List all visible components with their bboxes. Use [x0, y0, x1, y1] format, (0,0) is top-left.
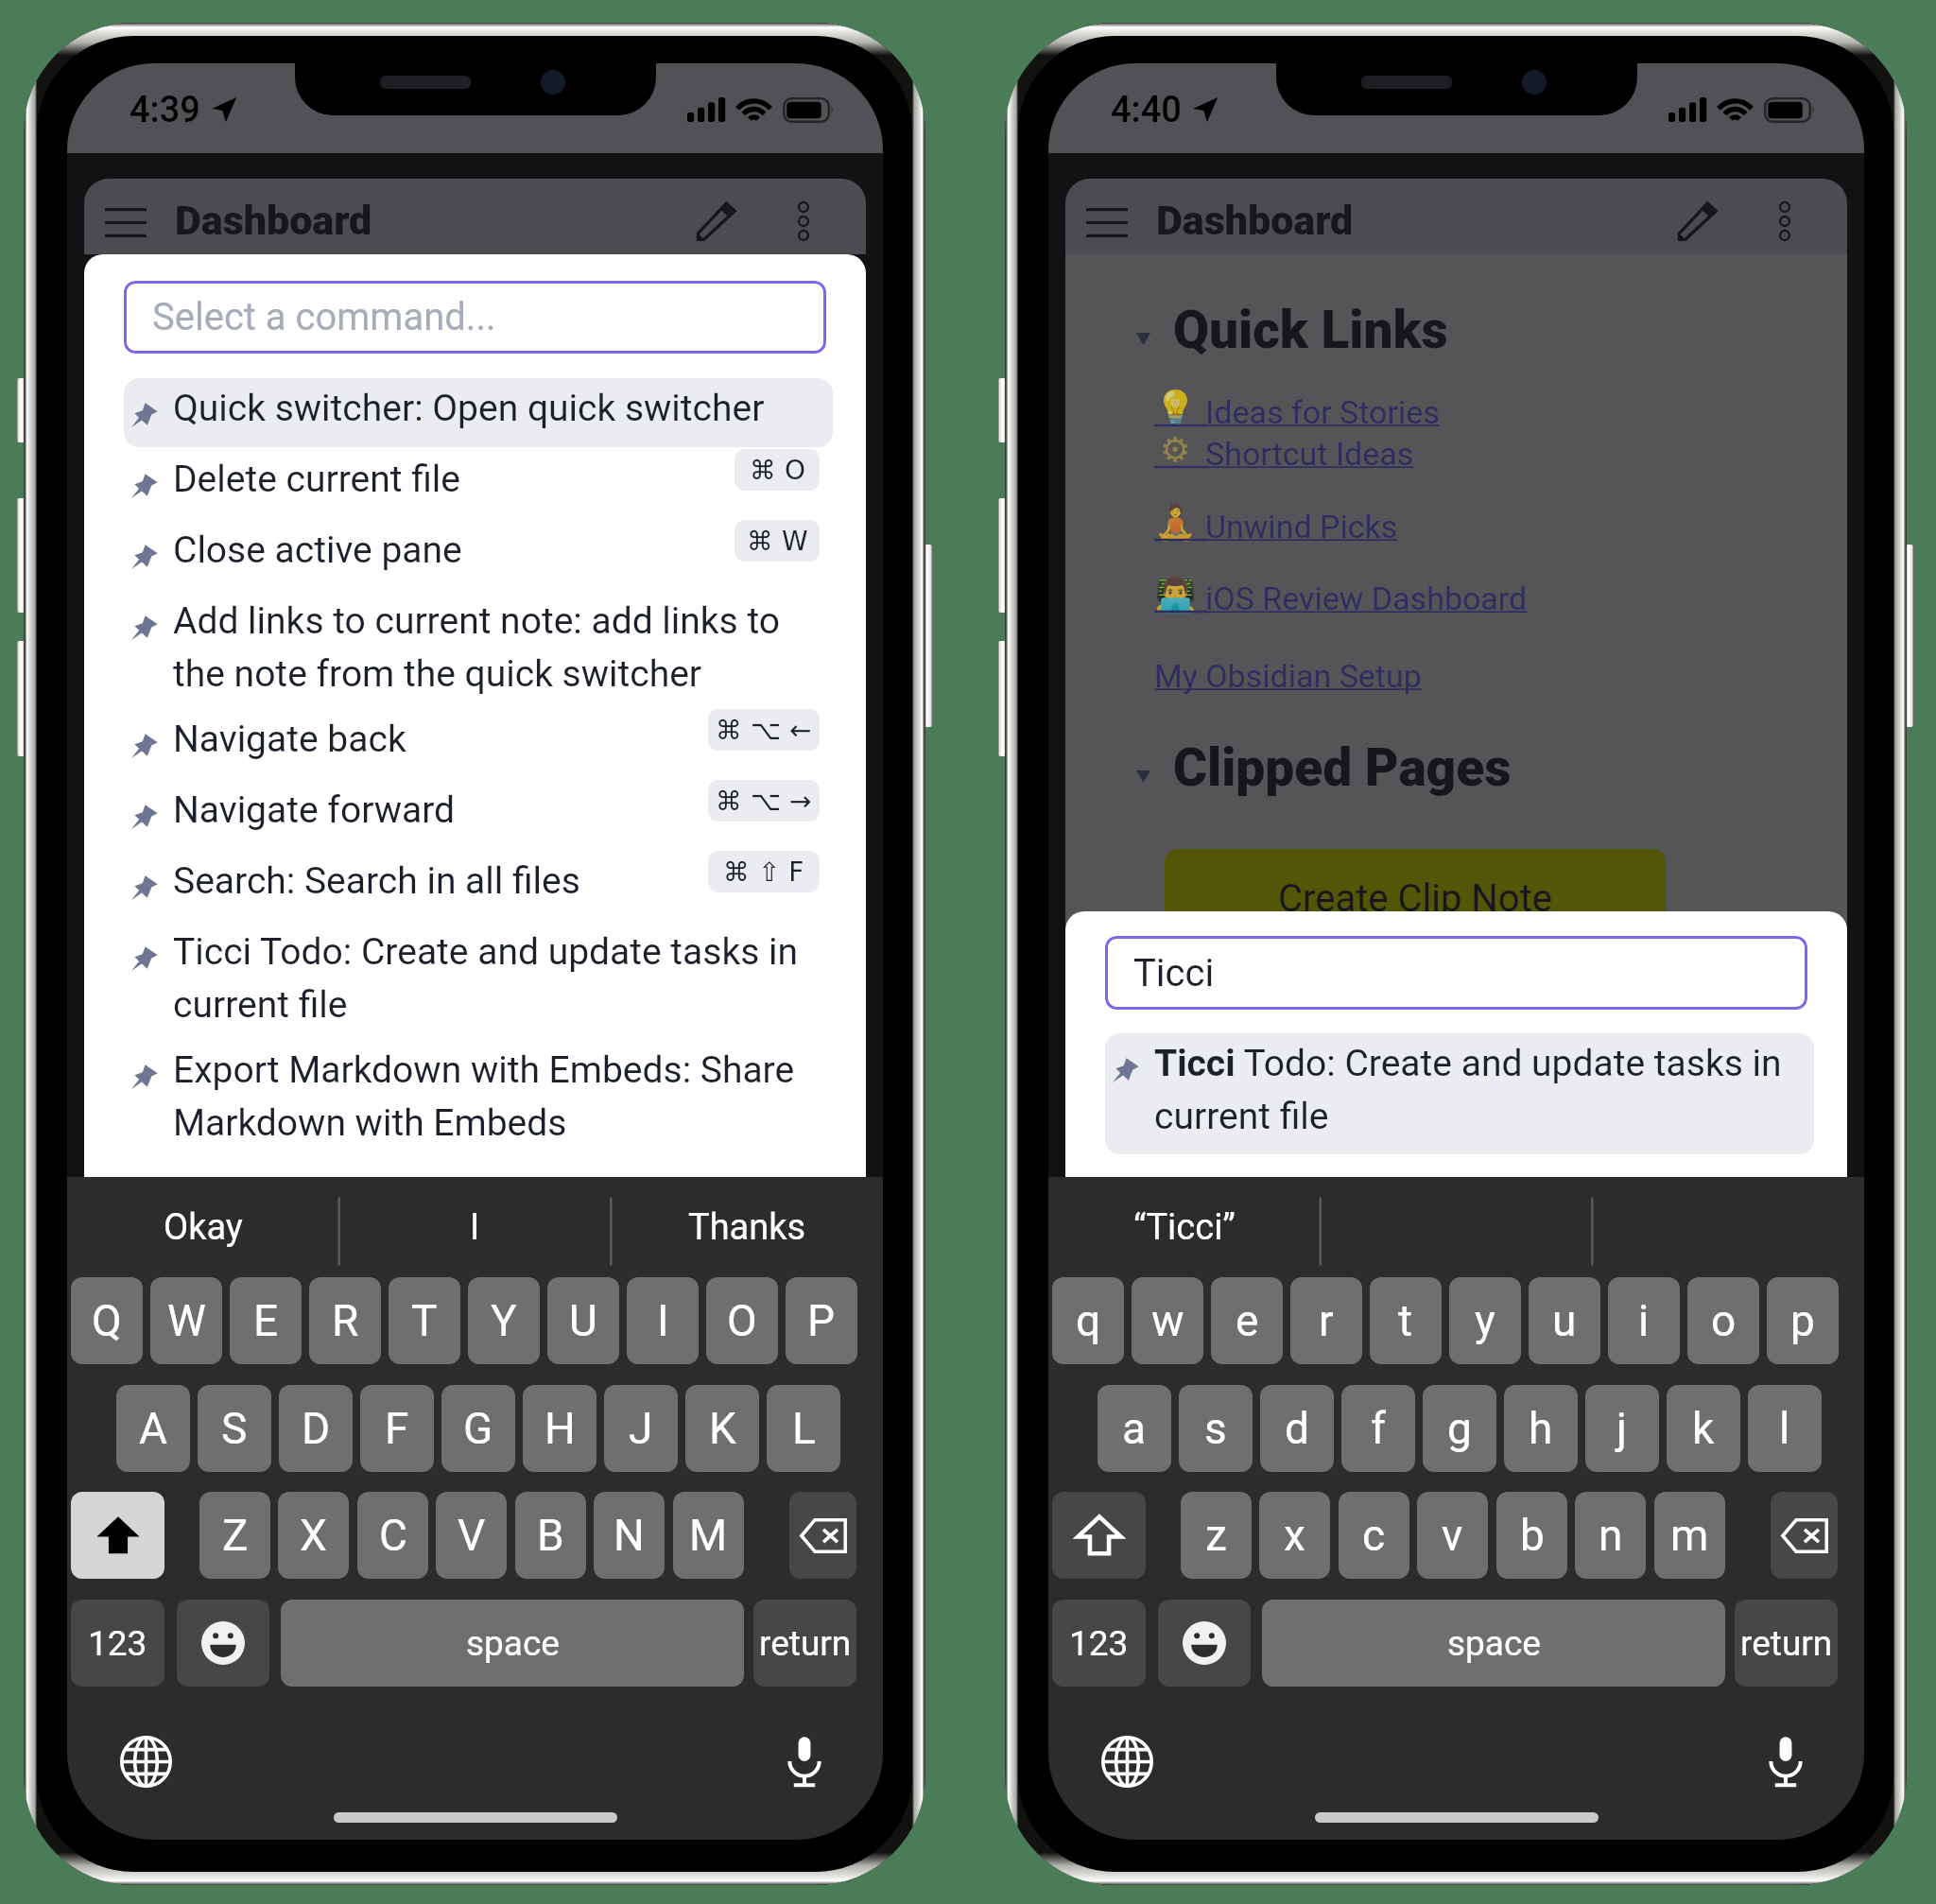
button[interactable]: Edit	[1656, 179, 1739, 254]
button[interactable]: Emoji	[1158, 1600, 1251, 1687]
button[interactable]: Dictate	[1752, 1727, 1820, 1795]
button[interactable]: Navigate back	[124, 709, 833, 778]
button[interactable]: p	[1767, 1277, 1839, 1364]
button[interactable]	[1320, 1177, 1592, 1277]
button[interactable]: Edit	[675, 179, 758, 254]
button[interactable]: b	[1496, 1492, 1567, 1579]
button[interactable]: k	[1667, 1385, 1740, 1472]
button[interactable]: return	[753, 1600, 856, 1687]
button[interactable]: Export Markdown with Embeds: Share Markd…	[124, 1040, 833, 1161]
button[interactable]: Add links to current note: add links to …	[124, 591, 833, 712]
button[interactable]: z	[1181, 1492, 1252, 1579]
button[interactable]: d	[1260, 1385, 1334, 1472]
button[interactable]: a	[1098, 1385, 1171, 1472]
button[interactable]: U	[547, 1277, 619, 1364]
button[interactable]: M	[673, 1492, 744, 1579]
button[interactable]: Menu	[1069, 179, 1145, 254]
button[interactable]: o	[1687, 1277, 1759, 1364]
button[interactable]: Thanks	[611, 1177, 883, 1277]
button[interactable]: I	[338, 1177, 611, 1277]
button[interactable]: Select a command...	[124, 281, 826, 354]
button[interactable]: W	[150, 1277, 222, 1364]
button[interactable]: space	[1262, 1600, 1725, 1687]
button[interactable]: P	[786, 1277, 857, 1364]
button[interactable]: h	[1504, 1385, 1578, 1472]
button[interactable]: L	[767, 1385, 840, 1472]
button[interactable]: u	[1529, 1277, 1600, 1364]
button[interactable]: D	[279, 1385, 353, 1472]
button[interactable]: Ticci	[1105, 936, 1807, 1010]
button[interactable]: Z	[199, 1492, 270, 1579]
button[interactable]: w	[1132, 1277, 1203, 1364]
staticText: Okay	[164, 1206, 243, 1249]
staticText: Navigate forward	[173, 788, 825, 832]
button[interactable]: n	[1575, 1492, 1646, 1579]
button[interactable]: Shift	[71, 1492, 164, 1579]
button[interactable]: K	[685, 1385, 759, 1472]
button[interactable]: I	[627, 1277, 699, 1364]
button[interactable]: Close active pane	[124, 520, 833, 589]
button[interactable]: More options	[1748, 179, 1820, 254]
button[interactable]: s	[1179, 1385, 1253, 1472]
button[interactable]: y	[1449, 1277, 1521, 1364]
button[interactable]: Shift	[1052, 1492, 1146, 1579]
button[interactable]: space	[281, 1600, 744, 1687]
button[interactable]: Emoji	[177, 1600, 269, 1687]
button[interactable]: B	[515, 1492, 586, 1579]
button[interactable]: j	[1585, 1385, 1659, 1472]
button[interactable]: t	[1370, 1277, 1442, 1364]
button[interactable]: G	[441, 1385, 515, 1472]
button[interactable]: Switch keyboard	[1093, 1727, 1161, 1795]
button[interactable]: Dictate	[770, 1727, 838, 1795]
staticText: j	[1616, 1403, 1628, 1454]
button[interactable]: g	[1423, 1385, 1496, 1472]
staticText: s	[1204, 1403, 1227, 1454]
button[interactable]: e	[1211, 1277, 1283, 1364]
button[interactable]: E	[230, 1277, 302, 1364]
button[interactable]: T	[389, 1277, 460, 1364]
button[interactable]: More options	[767, 179, 838, 254]
button[interactable]: A	[116, 1385, 190, 1472]
button[interactable]: l	[1748, 1385, 1822, 1472]
button[interactable]: Switch keyboard	[112, 1727, 180, 1795]
button[interactable]: 123	[1052, 1600, 1146, 1687]
button[interactable]: Ticci Todo: Create and update tasks in c…	[1105, 1033, 1814, 1154]
button[interactable]: m	[1654, 1492, 1725, 1579]
button[interactable]: Create Clip Note	[1165, 849, 1666, 948]
button[interactable]: R	[309, 1277, 381, 1364]
button[interactable]: v	[1417, 1492, 1488, 1579]
staticText: Q	[92, 1295, 122, 1346]
button[interactable]: Backspace	[789, 1492, 856, 1579]
button[interactable]: c	[1339, 1492, 1409, 1579]
button[interactable]: O	[706, 1277, 778, 1364]
button[interactable]: Ticci Todo: Create and update tasks in c…	[124, 922, 833, 1043]
button[interactable]: f	[1341, 1385, 1415, 1472]
button[interactable]: Backspace	[1771, 1492, 1838, 1579]
button[interactable]: Q	[71, 1277, 143, 1364]
button[interactable]: C	[357, 1492, 428, 1579]
button[interactable]: Search: Search in all files	[124, 851, 833, 920]
button[interactable]: Quick switcher: Open quick switcher	[124, 378, 833, 447]
button[interactable]: “Ticci”	[1048, 1177, 1320, 1277]
button[interactable]: X	[278, 1492, 349, 1579]
button[interactable]: Delete current file	[124, 449, 833, 518]
button[interactable]: F	[360, 1385, 434, 1472]
button[interactable]: 123	[71, 1600, 164, 1687]
button[interactable]: r	[1290, 1277, 1362, 1364]
button[interactable]: i	[1608, 1277, 1680, 1364]
button[interactable]: Menu	[88, 179, 164, 254]
button[interactable]: Okay	[67, 1177, 338, 1277]
button[interactable]	[1592, 1177, 1864, 1277]
button[interactable]: V	[436, 1492, 507, 1579]
button[interactable]: Y	[468, 1277, 540, 1364]
button[interactable]: H	[523, 1385, 596, 1472]
button[interactable]: return	[1735, 1600, 1838, 1687]
button[interactable]: S	[198, 1385, 271, 1472]
button[interactable]: x	[1259, 1492, 1330, 1579]
staticText: W	[167, 1295, 206, 1346]
button[interactable]: Navigate forward	[124, 780, 833, 849]
staticText: B	[537, 1510, 564, 1561]
button[interactable]: q	[1052, 1277, 1124, 1364]
button[interactable]: J	[604, 1385, 678, 1472]
button[interactable]: N	[594, 1492, 665, 1579]
